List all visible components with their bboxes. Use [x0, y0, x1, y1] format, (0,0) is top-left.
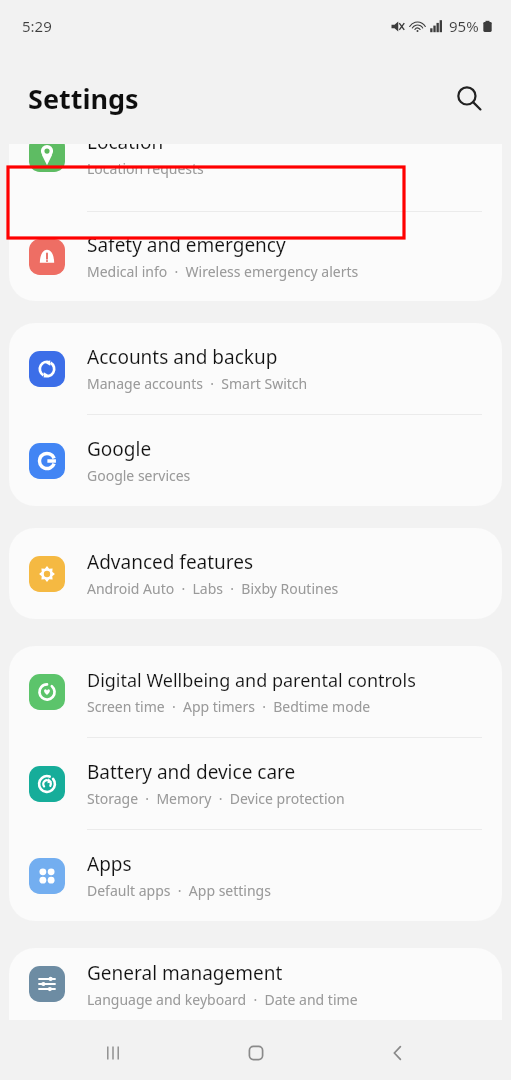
staticText: 95%: [449, 16, 479, 36]
staticText: Google: [87, 436, 152, 462]
staticText: Language and keyboard · Date and time: [87, 990, 358, 1009]
staticText: Medical info · Wireless emergency alerts: [87, 262, 359, 281]
staticText: Accounts and backup: [87, 344, 278, 370]
staticText: Apps: [87, 851, 132, 877]
staticText: Location requests: [87, 159, 204, 178]
staticText: Default apps · App settings: [87, 881, 271, 900]
staticText: Android Auto · Labs · Bixby Routines: [87, 579, 339, 598]
staticText: Advanced features: [87, 549, 254, 575]
button[interactable]: Advanced features: [9, 528, 502, 619]
staticText: Screen time · App timers · Bedtime mode: [87, 697, 371, 716]
button[interactable]: Location: [9, 144, 502, 187]
staticText: Settings: [28, 80, 139, 117]
staticText: Safety and emergency: [87, 232, 286, 258]
button[interactable]: Search: [449, 78, 489, 118]
button[interactable]: Battery and device care: [9, 738, 502, 829]
staticText: Location: [87, 144, 164, 155]
button[interactable]: Google: [9, 415, 502, 506]
button[interactable]: Home: [226, 1026, 286, 1080]
button[interactable]: Digital Wellbeing and parental controls: [9, 646, 502, 737]
staticText: Digital Wellbeing and parental controls: [87, 668, 416, 693]
staticText: Battery and device care: [87, 759, 296, 785]
button[interactable]: Back: [368, 1026, 428, 1080]
button[interactable]: Recent apps: [83, 1026, 143, 1080]
staticText: Storage · Memory · Device protection: [87, 789, 345, 808]
staticText: General management: [87, 960, 283, 986]
button[interactable]: General management: [9, 948, 502, 1020]
staticText: Google services: [87, 466, 191, 485]
staticText: Manage accounts · Smart Switch: [87, 374, 308, 393]
button[interactable]: Accounts and backup: [9, 323, 502, 414]
staticText: 5:29: [22, 16, 52, 36]
button[interactable]: Safety and emergency: [9, 212, 502, 301]
button[interactable]: Apps: [9, 830, 502, 921]
